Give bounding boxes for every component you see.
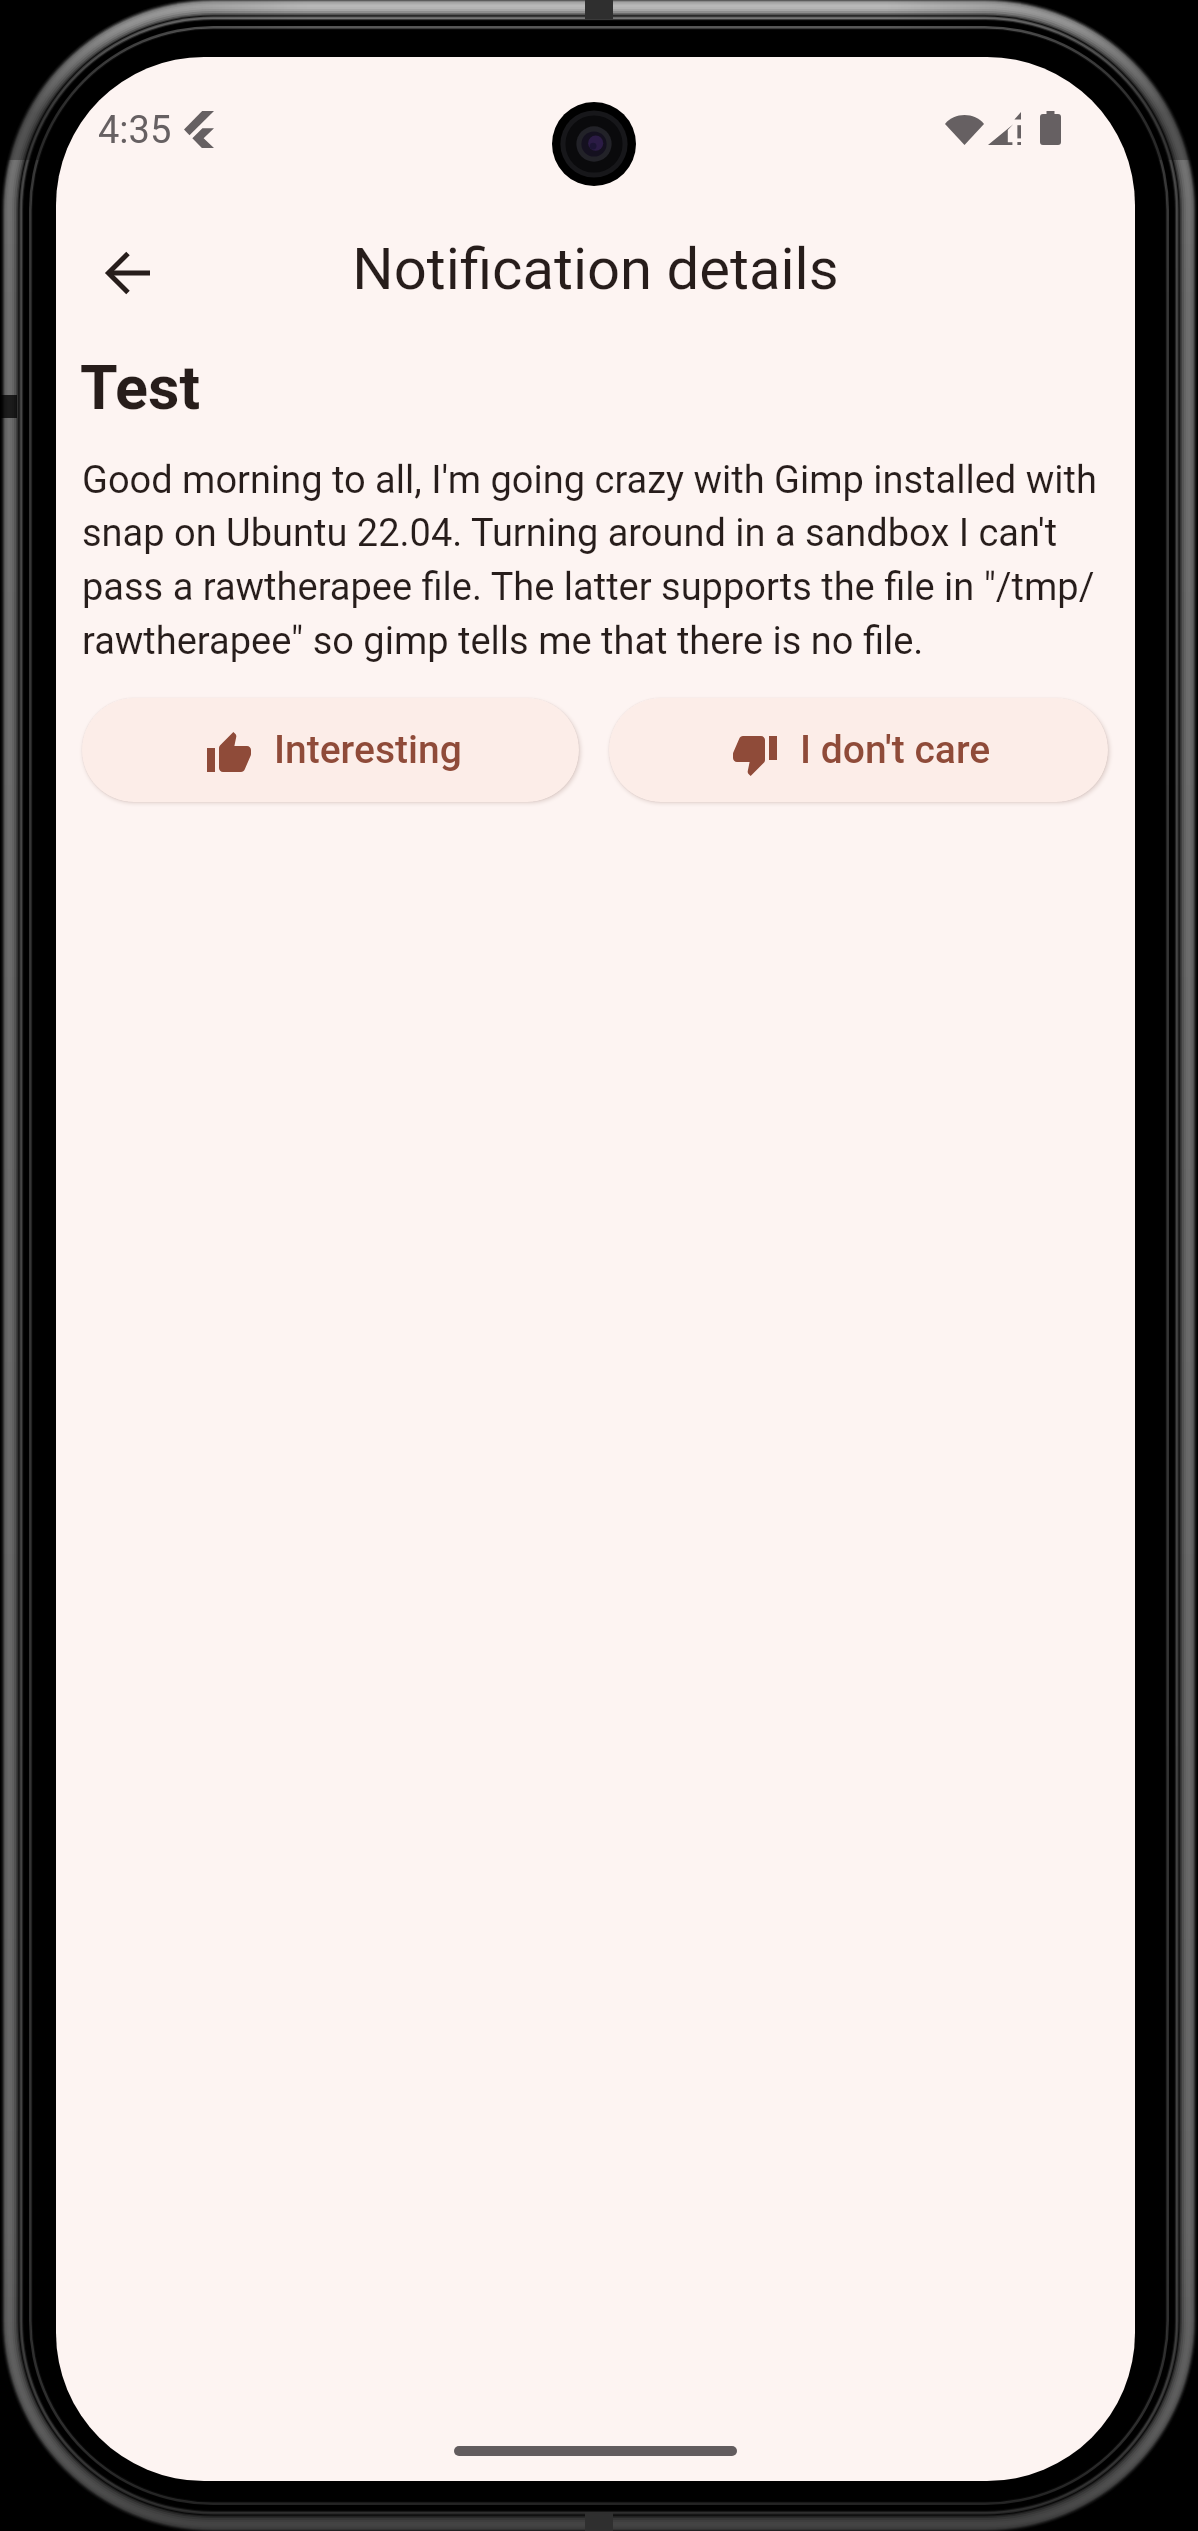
staticText: Interesting [274, 727, 462, 773]
staticText: I don't care [800, 727, 991, 773]
staticText: Good morning to all, I'm going crazy wit… [82, 458, 1109, 664]
button[interactable]: Back [78, 223, 178, 323]
staticText: Test [80, 352, 201, 423]
button[interactable]: I don't care [609, 698, 1108, 802]
button[interactable]: Interesting [82, 698, 579, 802]
staticText: 4:35 [98, 108, 172, 153]
staticText: Notification details [56, 235, 1135, 303]
